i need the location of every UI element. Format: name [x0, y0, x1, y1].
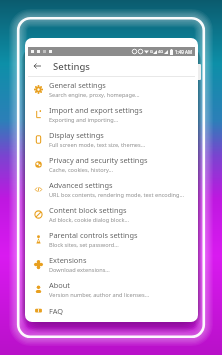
- staticText: Settings: [53, 60, 90, 73]
- staticText: About: [49, 280, 70, 290]
- staticText: Version number, author and licenses...: [49, 291, 150, 299]
- staticText: Advanced settings: [49, 180, 113, 190]
- staticText: Content block settings: [49, 205, 127, 215]
- staticText: Search engine, proxy, homepage...: [49, 91, 140, 99]
- button[interactable]: Privacy and security settings: [28, 152, 195, 177]
- button[interactable]: Import and export settings: [28, 102, 195, 127]
- staticText: Privacy and security settings: [49, 155, 148, 165]
- button[interactable]: FAQ: [28, 302, 195, 319]
- staticText: 1:49 AM: [175, 49, 193, 55]
- button[interactable]: Parental controls settings: [28, 227, 195, 252]
- button[interactable]: Advanced settings: [28, 177, 195, 202]
- button[interactable]: Extensions: [28, 252, 195, 277]
- staticText: Cache, cookies, history...: [49, 166, 114, 174]
- staticText: Exporting and importing...: [49, 116, 119, 124]
- staticText: Extensions: [49, 255, 87, 265]
- staticText: General settings: [49, 80, 106, 90]
- staticText: FAQ: [49, 306, 64, 316]
- staticText: URL box contents, rendering mode, text e…: [49, 191, 185, 199]
- button[interactable]: Content block settings: [28, 202, 195, 227]
- staticText: Block sites, set password...: [49, 241, 119, 249]
- button[interactable]: About: [28, 277, 195, 302]
- staticText: Display settings: [49, 130, 104, 140]
- staticText: G: [150, 49, 153, 54]
- staticText: Ad block, cookie dialog block...: [49, 216, 130, 224]
- staticText: Full screen mode, text size, themes...: [49, 141, 146, 149]
- staticText: 4G: [158, 49, 164, 54]
- button[interactable]: Back: [28, 57, 46, 75]
- staticText: Import and export settings: [49, 105, 143, 115]
- button[interactable]: Display settings: [28, 127, 195, 152]
- staticText: Parental controls settings: [49, 230, 138, 240]
- staticText: Download extensions...: [49, 266, 110, 274]
- button[interactable]: General settings: [28, 77, 195, 102]
